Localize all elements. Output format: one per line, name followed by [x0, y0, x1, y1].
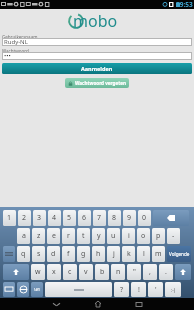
- button[interactable]: d: [47, 246, 60, 262]
- button[interactable]: Recent apps: [118, 298, 159, 310]
- staticText: p: [156, 231, 161, 241]
- button[interactable]: h: [92, 246, 105, 262]
- button[interactable]: w: [31, 264, 45, 280]
- button[interactable]: 0: [138, 210, 151, 226]
- staticText: ?: [120, 285, 124, 295]
- button[interactable]: 8: [108, 210, 121, 226]
- staticText: y: [97, 231, 101, 241]
- button[interactable]: .: [159, 264, 173, 280]
- button[interactable]: z: [32, 228, 45, 244]
- staticText: 5: [67, 213, 72, 223]
- button[interactable]: f: [62, 246, 75, 262]
- staticText: k: [127, 249, 131, 259]
- button[interactable]: 5: [63, 210, 76, 226]
- staticText: 9: [127, 213, 132, 223]
- staticText: l: [143, 249, 145, 259]
- button[interactable]: u: [107, 228, 120, 244]
- staticText: ": [133, 267, 136, 277]
- button[interactable]: q: [17, 246, 30, 262]
- staticText: ,: [149, 267, 151, 277]
- button[interactable]: m: [152, 246, 165, 262]
- button[interactable]: [3, 264, 29, 280]
- button[interactable]: s: [32, 246, 45, 262]
- button[interactable]: [3, 282, 15, 297]
- staticText: :-): [171, 287, 176, 293]
- staticText: Wachtwoord: [2, 48, 29, 52]
- button[interactable]: 3: [33, 210, 46, 226]
- button[interactable]: ?: [114, 282, 129, 297]
- staticText: s: [37, 249, 41, 259]
- button[interactable]: r: [62, 228, 75, 244]
- button[interactable]: Aanmelden: [2, 63, 192, 74]
- staticText: i: [128, 231, 130, 241]
- button[interactable]: c: [63, 264, 77, 280]
- staticText: !: [138, 285, 140, 295]
- staticText: a: [22, 231, 26, 241]
- button[interactable]: g: [77, 246, 90, 262]
- button[interactable]: [17, 282, 29, 297]
- button[interactable]: 2: [18, 210, 31, 226]
- button[interactable]: Home: [77, 298, 118, 310]
- button[interactable]: k: [122, 246, 135, 262]
- button[interactable]: [45, 282, 112, 297]
- staticText: r: [67, 231, 70, 241]
- button[interactable]: v: [79, 264, 93, 280]
- button[interactable]: !#1: [31, 282, 43, 297]
- button[interactable]: 1: [3, 210, 16, 226]
- staticText: o: [141, 231, 146, 241]
- button[interactable]: b: [95, 264, 109, 280]
- staticText: n: [116, 267, 121, 277]
- button[interactable]: 6: [78, 210, 91, 226]
- staticText: u: [111, 231, 116, 241]
- button[interactable]: Wachtwoord vergeten: [65, 78, 129, 88]
- staticText: z: [37, 231, 41, 241]
- staticText: 0: [142, 213, 147, 223]
- button[interactable]: n: [111, 264, 125, 280]
- button[interactable]: j: [107, 246, 120, 262]
- staticText: q: [21, 249, 26, 259]
- staticText: h: [96, 249, 101, 259]
- button[interactable]: !: [131, 282, 146, 297]
- staticText: m: [155, 249, 162, 259]
- button[interactable]: p: [152, 228, 165, 244]
- staticText: Rudy-NL: [4, 38, 28, 46]
- staticText: t: [82, 231, 85, 241]
- button[interactable]: Back: [36, 298, 77, 310]
- button[interactable]: Volgende: [167, 246, 191, 262]
- button[interactable]: [3, 246, 15, 262]
- button[interactable]: x: [47, 264, 61, 280]
- button[interactable]: i: [122, 228, 135, 244]
- staticText: w: [35, 267, 41, 277]
- staticText: e: [52, 231, 56, 241]
- button[interactable]: a: [17, 228, 30, 244]
- button[interactable]: ': [148, 282, 163, 297]
- button[interactable]: 9: [123, 210, 136, 226]
- button[interactable]: 7: [93, 210, 106, 226]
- button[interactable]: ,: [143, 264, 157, 280]
- button[interactable]: t: [77, 228, 90, 244]
- button[interactable]: :-): [165, 282, 181, 297]
- button[interactable]: 4: [48, 210, 61, 226]
- button[interactable]: -: [167, 228, 180, 244]
- staticText: 1: [7, 213, 12, 223]
- button[interactable]: y: [92, 228, 105, 244]
- staticText: •••: [4, 52, 11, 60]
- staticText: ': [155, 285, 157, 295]
- staticText: .: [165, 267, 167, 277]
- button[interactable]: e: [47, 228, 60, 244]
- staticText: 09:53: [176, 0, 193, 9]
- staticText: Volgende: [169, 251, 190, 257]
- staticText: 3: [37, 213, 42, 223]
- staticText: v: [84, 267, 88, 277]
- button[interactable]: o: [137, 228, 150, 244]
- staticText: f: [67, 249, 70, 259]
- staticText: 7: [97, 213, 102, 223]
- button[interactable]: [175, 264, 191, 280]
- button[interactable]: [153, 210, 189, 226]
- staticText: mobo: [73, 10, 118, 32]
- staticText: c: [68, 267, 72, 277]
- staticText: g: [81, 249, 86, 259]
- button[interactable]: ": [127, 264, 141, 280]
- staticText: 8: [112, 213, 117, 223]
- button[interactable]: l: [137, 246, 150, 262]
